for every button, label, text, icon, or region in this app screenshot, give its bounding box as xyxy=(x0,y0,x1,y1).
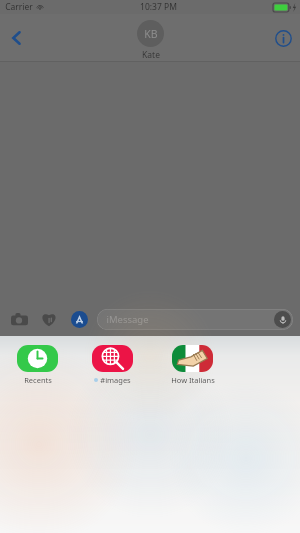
button[interactable]: Back xyxy=(0,21,34,55)
button[interactable]: Dictate xyxy=(274,311,291,328)
staticText: How Italians xyxy=(171,375,215,385)
staticText: Carrier xyxy=(5,1,33,13)
staticText: Kate xyxy=(142,49,160,61)
button[interactable]: How Italians xyxy=(150,345,235,385)
button[interactable]: iMessage xyxy=(97,309,293,330)
button[interactable]: KB xyxy=(137,20,164,61)
staticText: KB xyxy=(144,27,158,41)
staticText: #images xyxy=(100,375,131,385)
staticText: 10:37 PM xyxy=(140,1,177,13)
button[interactable]: #images xyxy=(75,345,150,385)
button[interactable]: Digital Touch xyxy=(36,306,62,332)
button[interactable]: App Store xyxy=(66,306,92,332)
button[interactable]: Camera xyxy=(6,306,32,332)
button[interactable]: Details xyxy=(266,21,300,55)
staticText: iMessage xyxy=(106,313,149,326)
button[interactable]: Recents xyxy=(0,345,75,385)
staticText: Recents xyxy=(24,375,52,385)
